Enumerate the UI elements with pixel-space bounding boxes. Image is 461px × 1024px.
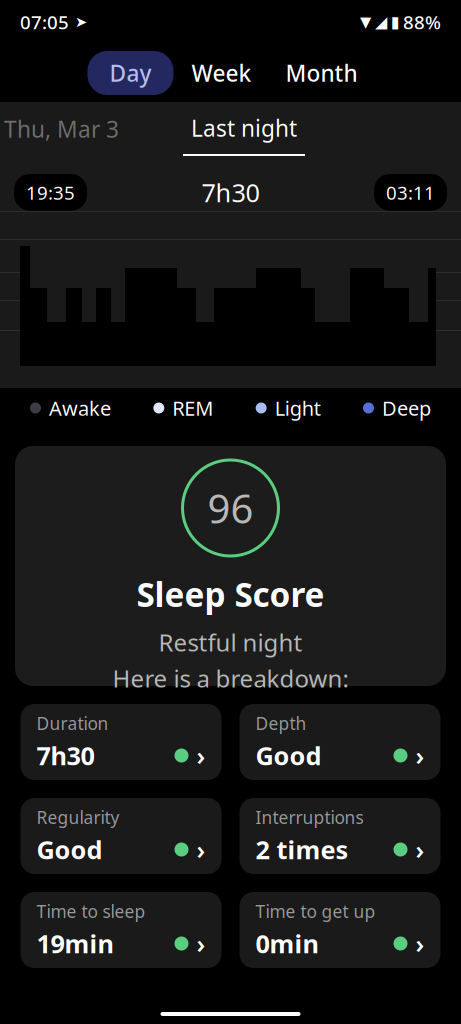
staticText: ▼: [360, 14, 371, 30]
staticText: ›: [415, 833, 424, 866]
button[interactable]: Week: [173, 51, 269, 95]
staticText: ➤: [75, 14, 87, 30]
staticText: ▮: [391, 13, 400, 31]
staticText: Last night: [191, 113, 297, 143]
button[interactable]: Day: [87, 51, 173, 95]
staticText: ◢: [375, 13, 387, 31]
staticText: Light: [275, 395, 321, 421]
staticText: 19:35: [26, 180, 75, 205]
button[interactable]: Interruptions: [239, 798, 440, 874]
staticText: Here is a breakdown:: [112, 662, 348, 694]
staticText: REM: [172, 395, 213, 421]
staticText: 07:05: [20, 10, 69, 34]
staticText: 7h30: [36, 739, 94, 772]
staticText: Day: [109, 58, 151, 88]
staticText: ›: [415, 927, 424, 960]
staticText: ›: [415, 739, 424, 772]
staticText: ›: [196, 927, 205, 960]
staticText: 19min: [36, 927, 113, 960]
staticText: Depth: [255, 712, 306, 735]
staticText: ›: [196, 833, 205, 866]
staticText: 96: [207, 481, 253, 534]
staticText: 7h30: [201, 176, 259, 209]
staticText: 2 times: [255, 833, 348, 866]
staticText: Time to sleep: [36, 900, 145, 923]
staticText: Restful night: [158, 626, 302, 658]
button[interactable]: Duration: [20, 704, 221, 780]
staticText: Interruptions: [255, 806, 363, 829]
button[interactable]: Last night: [154, 102, 334, 156]
staticText: Time to get up: [255, 900, 375, 923]
button[interactable]: Month: [269, 51, 373, 95]
staticText: 03:11: [386, 180, 435, 205]
staticText: Good: [255, 739, 321, 772]
staticText: Awake: [49, 395, 111, 421]
staticText: Thu, Mar 3: [4, 114, 119, 144]
staticText: Sleep Score: [136, 572, 324, 616]
staticText: Duration: [36, 712, 108, 735]
staticText: Regularity: [36, 806, 119, 829]
staticText: 0min: [255, 927, 318, 960]
button[interactable]: Thu, Mar 3: [0, 114, 154, 144]
staticText: Month: [285, 58, 357, 88]
staticText: ›: [196, 739, 205, 772]
button[interactable]: Time to get up: [239, 892, 440, 968]
button[interactable]: Time to sleep: [20, 892, 221, 968]
staticText: Good: [36, 833, 102, 866]
button[interactable]: Regularity: [20, 798, 221, 874]
button[interactable]: Depth: [239, 704, 440, 780]
staticText: Deep: [382, 395, 431, 421]
staticText: 88%: [403, 10, 441, 34]
staticText: Week: [191, 58, 251, 88]
